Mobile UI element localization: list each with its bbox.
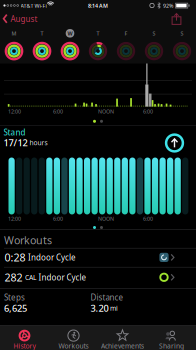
button[interactable]: Achievements: [98, 325, 147, 350]
staticText: 6,625: [4, 302, 27, 314]
button[interactable]: F: [112, 24, 140, 64]
staticText: 6:00: [53, 108, 63, 115]
staticText: Workouts: [4, 233, 52, 247]
button[interactable]: History: [0, 325, 49, 350]
staticText: 0:28: [4, 250, 25, 264]
staticText: 12:00: [8, 108, 21, 115]
staticText: Indoor Cycle: [28, 252, 76, 263]
staticText: CAL: [25, 273, 36, 282]
staticText: 6:00: [53, 215, 63, 222]
staticText: History: [13, 341, 35, 350]
staticText: S: [180, 30, 183, 37]
staticText: Sharing: [159, 341, 184, 350]
button[interactable]: Workouts: [49, 325, 98, 350]
button[interactable]: T: [84, 24, 112, 64]
staticText: NOON: [98, 108, 114, 115]
staticText: Distance: [90, 292, 123, 303]
staticText: 3.20: [90, 302, 108, 314]
staticText: T: [96, 30, 99, 37]
staticText: 12:00: [8, 215, 21, 222]
staticText: S: [152, 30, 155, 37]
staticText: 17/12: [3, 136, 27, 149]
staticText: T: [40, 30, 43, 37]
staticText: 6:00: [143, 108, 153, 115]
button[interactable]: Sharing: [147, 325, 196, 350]
button[interactable]: S: [140, 24, 168, 64]
staticText: M: [11, 30, 16, 37]
button[interactable]: M: [0, 24, 28, 64]
staticText: 6:00: [143, 215, 153, 222]
button[interactable]: August: [0, 10, 42, 28]
button[interactable]: 282: [0, 268, 196, 287]
staticText: Indoor Cycle: [38, 272, 86, 283]
button[interactable]: 0:28: [0, 248, 196, 267]
staticText: F: [124, 30, 127, 37]
button[interactable]: W: [56, 24, 84, 64]
staticText: mi: [110, 304, 118, 313]
button[interactable]: T: [28, 24, 56, 64]
staticText: Stand: [3, 127, 25, 138]
button[interactable]: [170, 12, 183, 26]
staticText: Achievements: [101, 341, 144, 350]
staticText: Workouts: [58, 341, 88, 350]
staticText: August: [10, 13, 37, 24]
staticText: 8:14 AM: [88, 2, 108, 9]
staticText: NOON: [98, 215, 114, 222]
staticText: hours: [29, 138, 47, 147]
staticText: 92%: [163, 2, 173, 9]
staticText: AT&T Wi-Fi: [20, 2, 46, 9]
staticText: Steps: [4, 292, 25, 303]
button[interactable]: S: [168, 24, 196, 64]
staticText: 282: [4, 270, 22, 284]
staticText: W: [67, 30, 72, 37]
